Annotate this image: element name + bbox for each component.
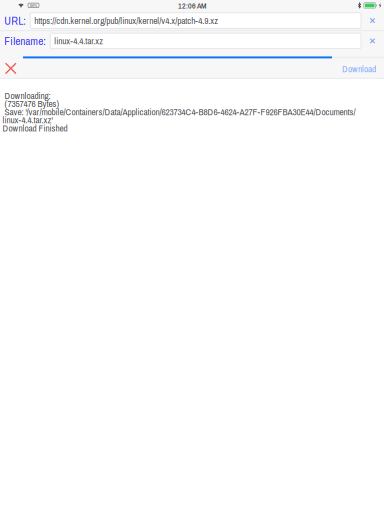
- staticText: https://cdn.kernel.org/pub/linux/kernel/…: [34, 14, 218, 27]
- staticText: linux-4.4.tar.xz: [54, 35, 103, 47]
- staticText: URL:: [4, 13, 26, 28]
- staticText: 88%: [30, 2, 37, 8]
- staticText: (7357476 Bytes): [3, 97, 60, 110]
- button[interactable]: Cancel download: [0, 60, 21, 78]
- button[interactable]: Clear URL: [361, 11, 384, 30]
- staticText: linux-4.4.tar.xz': [3, 114, 53, 126]
- staticText: Save: '/var/mobile/Containers/Data/Appli…: [3, 106, 356, 118]
- button[interactable]: Clear filename: [361, 31, 384, 50]
- staticText: 12:06 AM: [178, 0, 206, 11]
- staticText: Filename:: [4, 33, 46, 49]
- button[interactable]: Download: [342, 60, 384, 78]
- staticText: Download: [342, 63, 376, 75]
- staticText: Downloading:: [3, 89, 51, 102]
- staticText: Download Finished: [3, 122, 68, 134]
